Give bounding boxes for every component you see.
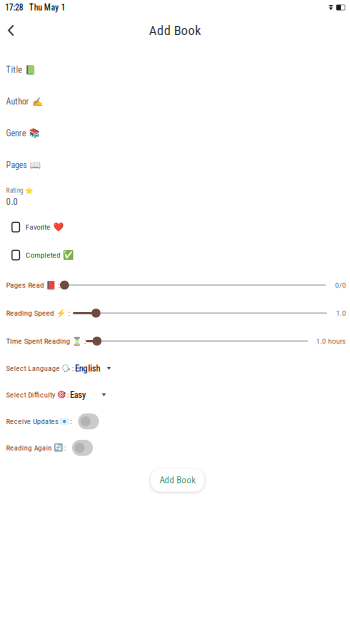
button[interactable]: Author xyxy=(0,86,350,117)
staticText: Pages xyxy=(6,160,27,170)
staticText: 📕 xyxy=(46,280,56,290)
staticText: : xyxy=(84,336,86,346)
staticText: Select Language xyxy=(6,364,60,373)
staticText: Receive Updates xyxy=(6,417,58,426)
button[interactable]: Add Book xyxy=(142,465,207,495)
staticText: Completed xyxy=(25,250,60,260)
staticText: : xyxy=(64,443,66,452)
staticText: ✅ xyxy=(63,250,74,260)
staticText: 📗 xyxy=(24,65,35,75)
button[interactable]: English xyxy=(74,357,111,379)
staticText: Rating xyxy=(6,187,23,194)
button[interactable]: Receive Updates xyxy=(72,409,105,433)
staticText: Easy xyxy=(70,389,86,400)
staticText: : xyxy=(58,280,60,290)
staticText: Author xyxy=(6,96,29,107)
staticText: : xyxy=(68,308,70,318)
button[interactable]: Easy xyxy=(69,384,106,406)
staticText: Add Book xyxy=(149,23,201,38)
staticText: ✍️ xyxy=(31,96,42,107)
staticText: : xyxy=(67,390,69,399)
staticText: : xyxy=(72,364,74,373)
button[interactable]: Reading Again xyxy=(66,436,99,460)
staticText: ⏳ xyxy=(72,336,82,346)
staticText: 0.0 xyxy=(6,196,18,207)
button[interactable]: Title xyxy=(0,54,350,86)
button[interactable]: Genre xyxy=(0,117,350,149)
staticText: Title xyxy=(6,65,22,75)
staticText: Reading Speed xyxy=(6,308,54,318)
staticText: Time Spent Reading xyxy=(6,336,70,346)
staticText: Pages Read xyxy=(6,280,44,290)
staticText: English xyxy=(75,363,100,374)
staticText: 1.0 hours xyxy=(316,336,346,346)
staticText: 1.0 xyxy=(336,308,346,318)
button[interactable]: Favorite xyxy=(0,213,350,241)
staticText: ⭐ xyxy=(25,187,33,194)
staticText: Thu May 1 xyxy=(29,2,65,13)
staticText: ❤️ xyxy=(53,222,64,232)
staticText: 🎯 xyxy=(56,391,65,399)
staticText: 📖 xyxy=(29,160,40,170)
staticText: Select Difficulty xyxy=(6,390,55,399)
staticText: ⚡ xyxy=(56,308,66,318)
staticText: : xyxy=(70,417,72,426)
staticText: 📚 xyxy=(28,128,39,138)
button[interactable]: Completed xyxy=(0,241,350,269)
staticText: Reading Again xyxy=(6,443,52,452)
button[interactable]: Back xyxy=(0,18,22,42)
staticText: 🔄 xyxy=(53,444,62,452)
staticText: Add Book xyxy=(159,475,195,485)
staticText: 📧 xyxy=(59,417,68,425)
staticText: 🗣 xyxy=(61,364,70,372)
staticText: Favorite xyxy=(25,222,50,232)
staticText: 0/0 xyxy=(335,280,346,290)
button[interactable]: Pages xyxy=(0,149,350,181)
staticText: 17:28 xyxy=(5,2,23,13)
staticText: Genre xyxy=(6,128,26,138)
